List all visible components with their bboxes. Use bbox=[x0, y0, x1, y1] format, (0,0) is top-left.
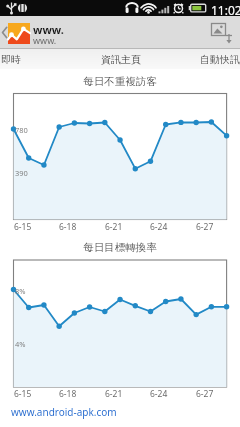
staticText: 390 bbox=[15, 168, 28, 178]
staticText: www. bbox=[33, 34, 57, 46]
staticText: 6-15 bbox=[14, 221, 32, 233]
staticText: 6-27 bbox=[196, 388, 214, 400]
staticText: 6-24 bbox=[150, 388, 168, 400]
staticText: 4% bbox=[15, 339, 26, 349]
button[interactable]: Up bbox=[0, 16, 33, 49]
staticText: 即時 bbox=[1, 53, 21, 66]
staticText: 資訊主頁 bbox=[101, 53, 141, 66]
staticText: 8% bbox=[15, 286, 26, 296]
button[interactable]: 資訊主頁 bbox=[68, 49, 173, 69]
staticText: 自動快訊 bbox=[200, 53, 240, 66]
staticText: 6-27 bbox=[196, 221, 214, 233]
staticText: 每日目標轉換率 bbox=[0, 241, 240, 254]
staticText: 780 bbox=[15, 125, 28, 135]
staticText: 6-15 bbox=[14, 388, 32, 400]
staticText: 每日不重複訪客 bbox=[0, 75, 240, 88]
staticText: 6-21 bbox=[105, 221, 123, 233]
staticText: 6-24 bbox=[150, 221, 168, 233]
staticText: 6-21 bbox=[105, 388, 123, 400]
staticText: 6-18 bbox=[59, 388, 77, 400]
staticText: 6-18 bbox=[59, 221, 77, 233]
button[interactable]: Save image bbox=[205, 16, 240, 49]
button[interactable]: 自動快訊 bbox=[167, 49, 240, 69]
staticText: 11:02 bbox=[211, 2, 240, 18]
staticText: www.android-apk.com bbox=[11, 405, 117, 419]
staticText: www. bbox=[33, 22, 64, 37]
button[interactable]: 即時 bbox=[0, 49, 63, 69]
